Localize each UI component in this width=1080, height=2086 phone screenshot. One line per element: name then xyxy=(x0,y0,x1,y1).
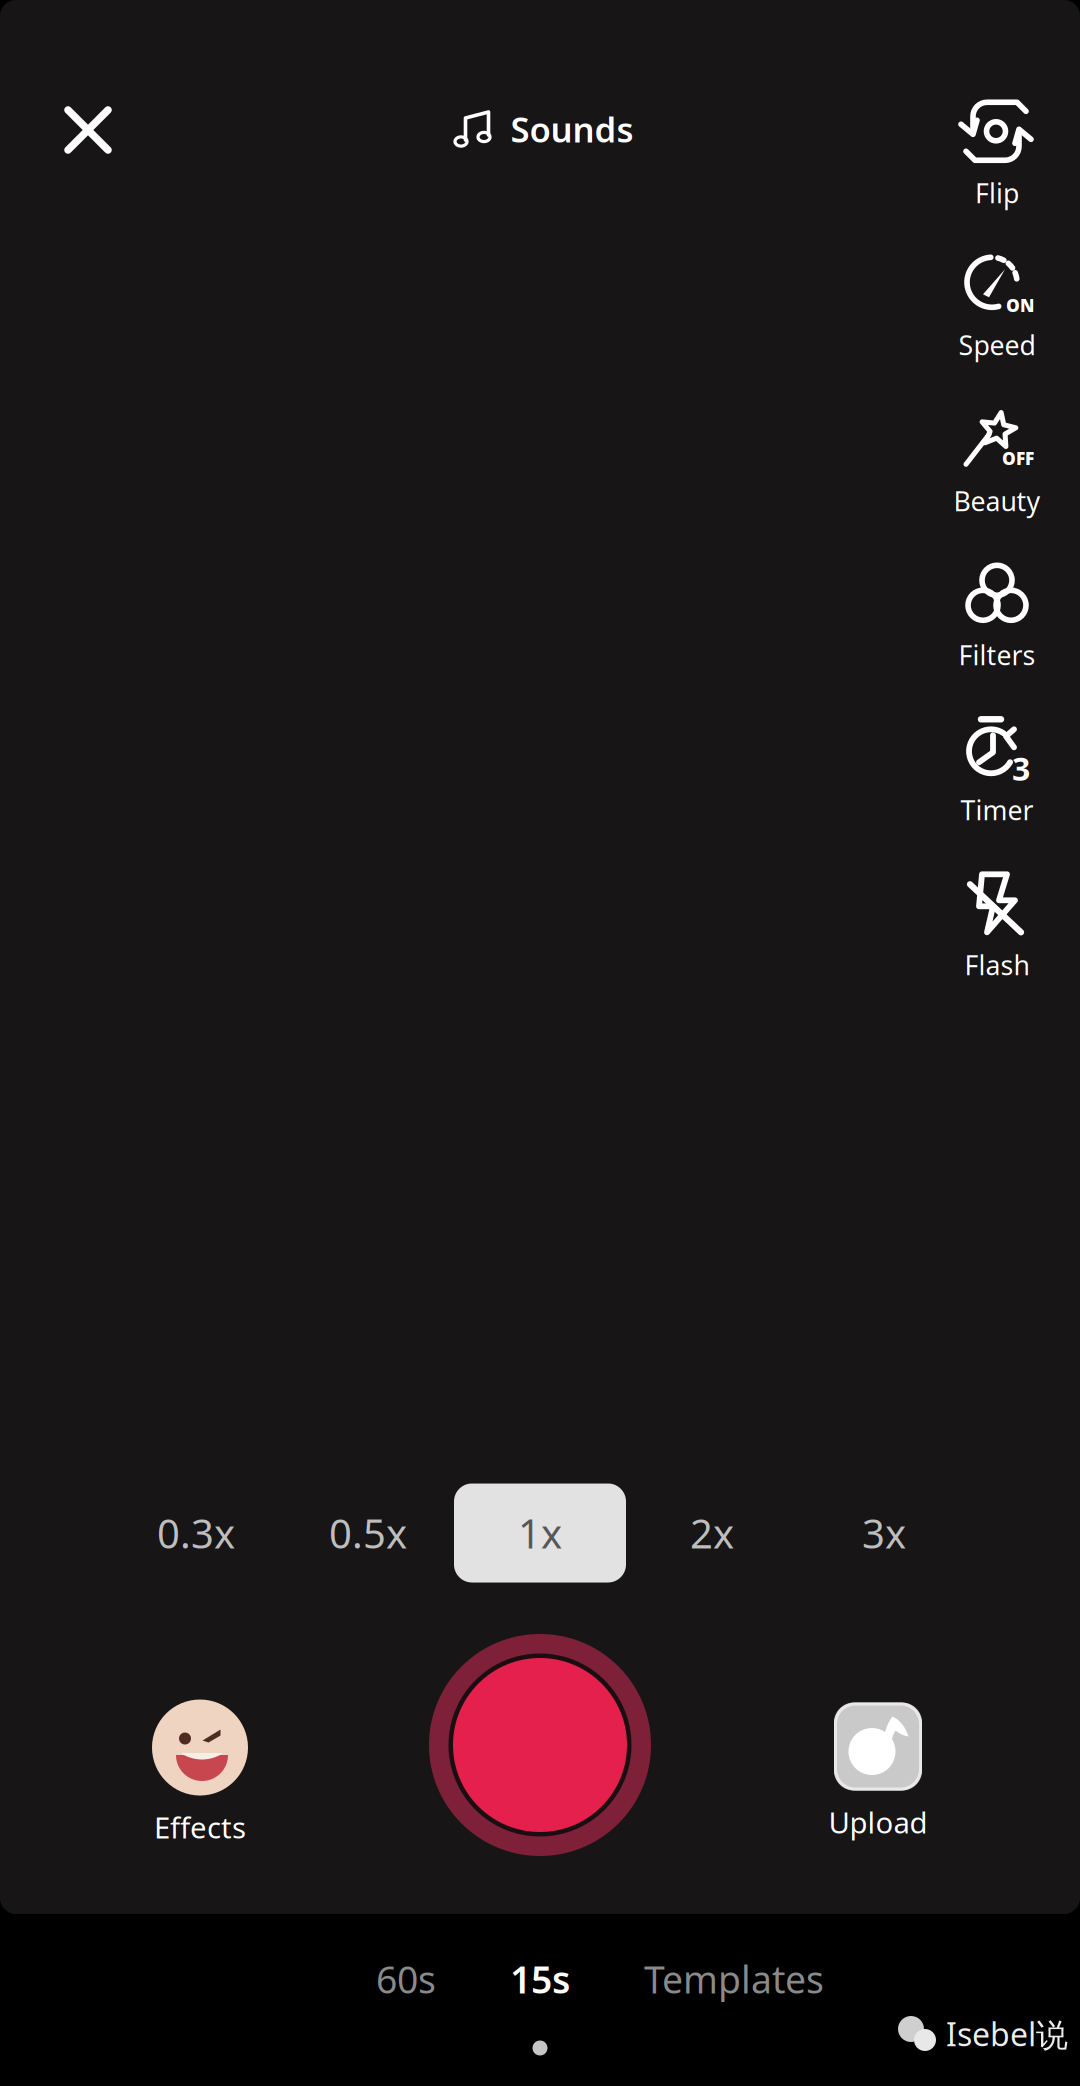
button[interactable]: Upload xyxy=(773,1687,983,1857)
staticText: OFF xyxy=(1002,447,1034,470)
button[interactable]: Effects xyxy=(95,1688,305,1858)
staticText: 1x xyxy=(518,1506,562,1559)
button[interactable]: Flip xyxy=(927,100,1067,210)
staticText: Timer xyxy=(960,792,1033,828)
button[interactable]: Filters xyxy=(927,562,1067,672)
staticText: Speed xyxy=(958,327,1035,363)
button[interactable]: Flash xyxy=(927,872,1067,982)
button[interactable]: ON xyxy=(927,252,1067,362)
staticText: Flash xyxy=(964,947,1029,983)
button[interactable]: Sounds xyxy=(394,81,694,177)
button[interactable]: 15s xyxy=(485,1936,595,2022)
button[interactable]: Record xyxy=(423,1628,657,1862)
button[interactable]: 2x xyxy=(626,1483,798,1582)
staticText: 3 xyxy=(1012,747,1030,789)
staticText: Upload xyxy=(828,1802,927,1841)
staticText: 3x xyxy=(862,1506,906,1559)
button[interactable]: Templates xyxy=(619,1936,849,2022)
staticText: Sounds xyxy=(510,106,633,152)
staticText: 2x xyxy=(690,1506,734,1559)
button[interactable]: 1x xyxy=(454,1483,626,1582)
staticText: Beauty xyxy=(953,483,1040,519)
staticText: 15s xyxy=(510,1954,570,2004)
button[interactable]: 60s xyxy=(346,1936,466,2022)
button[interactable]: 0.5x xyxy=(282,1483,454,1582)
staticText: Templates xyxy=(644,1954,824,2004)
button[interactable]: 0.3x xyxy=(110,1483,282,1582)
staticText: Effects xyxy=(154,1807,246,1846)
button[interactable]: OFF xyxy=(927,408,1067,518)
button[interactable]: Close xyxy=(33,75,143,185)
button[interactable]: 3 xyxy=(927,717,1067,827)
staticText: Isebel说 xyxy=(946,2013,1068,2055)
staticText: 0.5x xyxy=(329,1506,407,1559)
staticText: 60s xyxy=(376,1954,436,2004)
staticText: Flip xyxy=(975,175,1019,211)
button[interactable]: 3x xyxy=(798,1483,970,1582)
staticText: 0.3x xyxy=(157,1506,235,1559)
staticText: ON xyxy=(1006,294,1034,317)
staticText: Filters xyxy=(958,637,1035,673)
